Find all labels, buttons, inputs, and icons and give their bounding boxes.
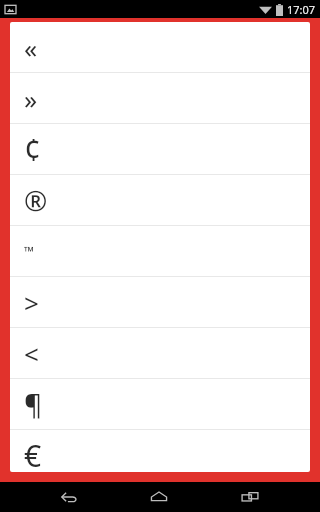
button[interactable]: Cent sign [10, 124, 310, 174]
button[interactable]: Euro sign [10, 430, 310, 472]
staticText: 17:07 [287, 2, 316, 17]
button[interactable]: Pilcrow [10, 379, 310, 429]
button[interactable]: Registered sign [10, 175, 310, 225]
button[interactable]: Greater than [10, 277, 310, 327]
staticText: < [24, 336, 39, 371]
button[interactable]: Home [138, 482, 180, 512]
staticText: ¢ [24, 129, 42, 170]
button[interactable]: Less than [10, 328, 310, 378]
staticText: » [24, 81, 38, 116]
staticText: ™ [24, 242, 35, 260]
button[interactable]: Back [48, 482, 90, 512]
button[interactable]: Double right angle quote [10, 73, 310, 123]
staticText: € [24, 435, 42, 472]
staticText: > [24, 285, 39, 320]
button[interactable]: Recent apps [229, 482, 271, 512]
button[interactable]: Trademark sign [10, 226, 310, 276]
staticText: ¶ [24, 385, 43, 423]
staticText: ® [24, 181, 48, 219]
staticText: « [24, 30, 38, 65]
button[interactable]: Double left angle quote [10, 22, 310, 72]
